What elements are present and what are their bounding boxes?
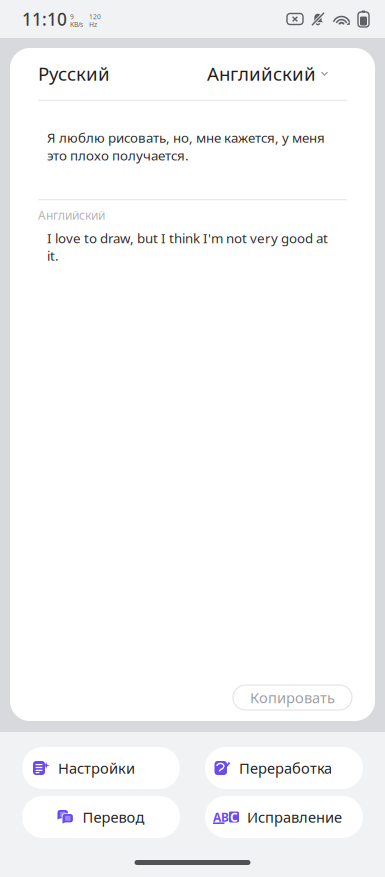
staticText: Копировать	[250, 688, 335, 707]
button[interactable]: Русский	[38, 61, 110, 86]
button[interactable]: Настройки	[22, 747, 180, 789]
staticText: AB	[213, 809, 229, 825]
staticText: I love to draw, but I think I'm not very…	[47, 229, 328, 264]
staticText: Английский	[207, 61, 316, 86]
staticText: Переработка	[239, 758, 332, 778]
button[interactable]: Английский	[207, 61, 328, 86]
staticText: Hz	[89, 20, 97, 29]
staticText: C	[230, 809, 238, 825]
staticText: KB/s	[70, 20, 83, 29]
button[interactable]: Переработка	[205, 747, 363, 789]
staticText: Настройки	[58, 758, 135, 778]
button[interactable]: AB	[205, 796, 363, 838]
button[interactable]: Перевод	[22, 796, 180, 838]
staticText: Исправление	[247, 807, 342, 827]
button[interactable]: Копировать	[233, 685, 352, 710]
staticText: 9	[70, 12, 74, 21]
staticText: 120	[89, 12, 101, 21]
staticText: 11:10	[22, 7, 67, 30]
staticText: Русский	[38, 61, 110, 86]
staticText: Перевод	[82, 807, 144, 827]
staticText: Я люблю рисовать, но, мне кажется, у мен…	[47, 129, 325, 164]
staticText: Английский	[38, 207, 105, 223]
